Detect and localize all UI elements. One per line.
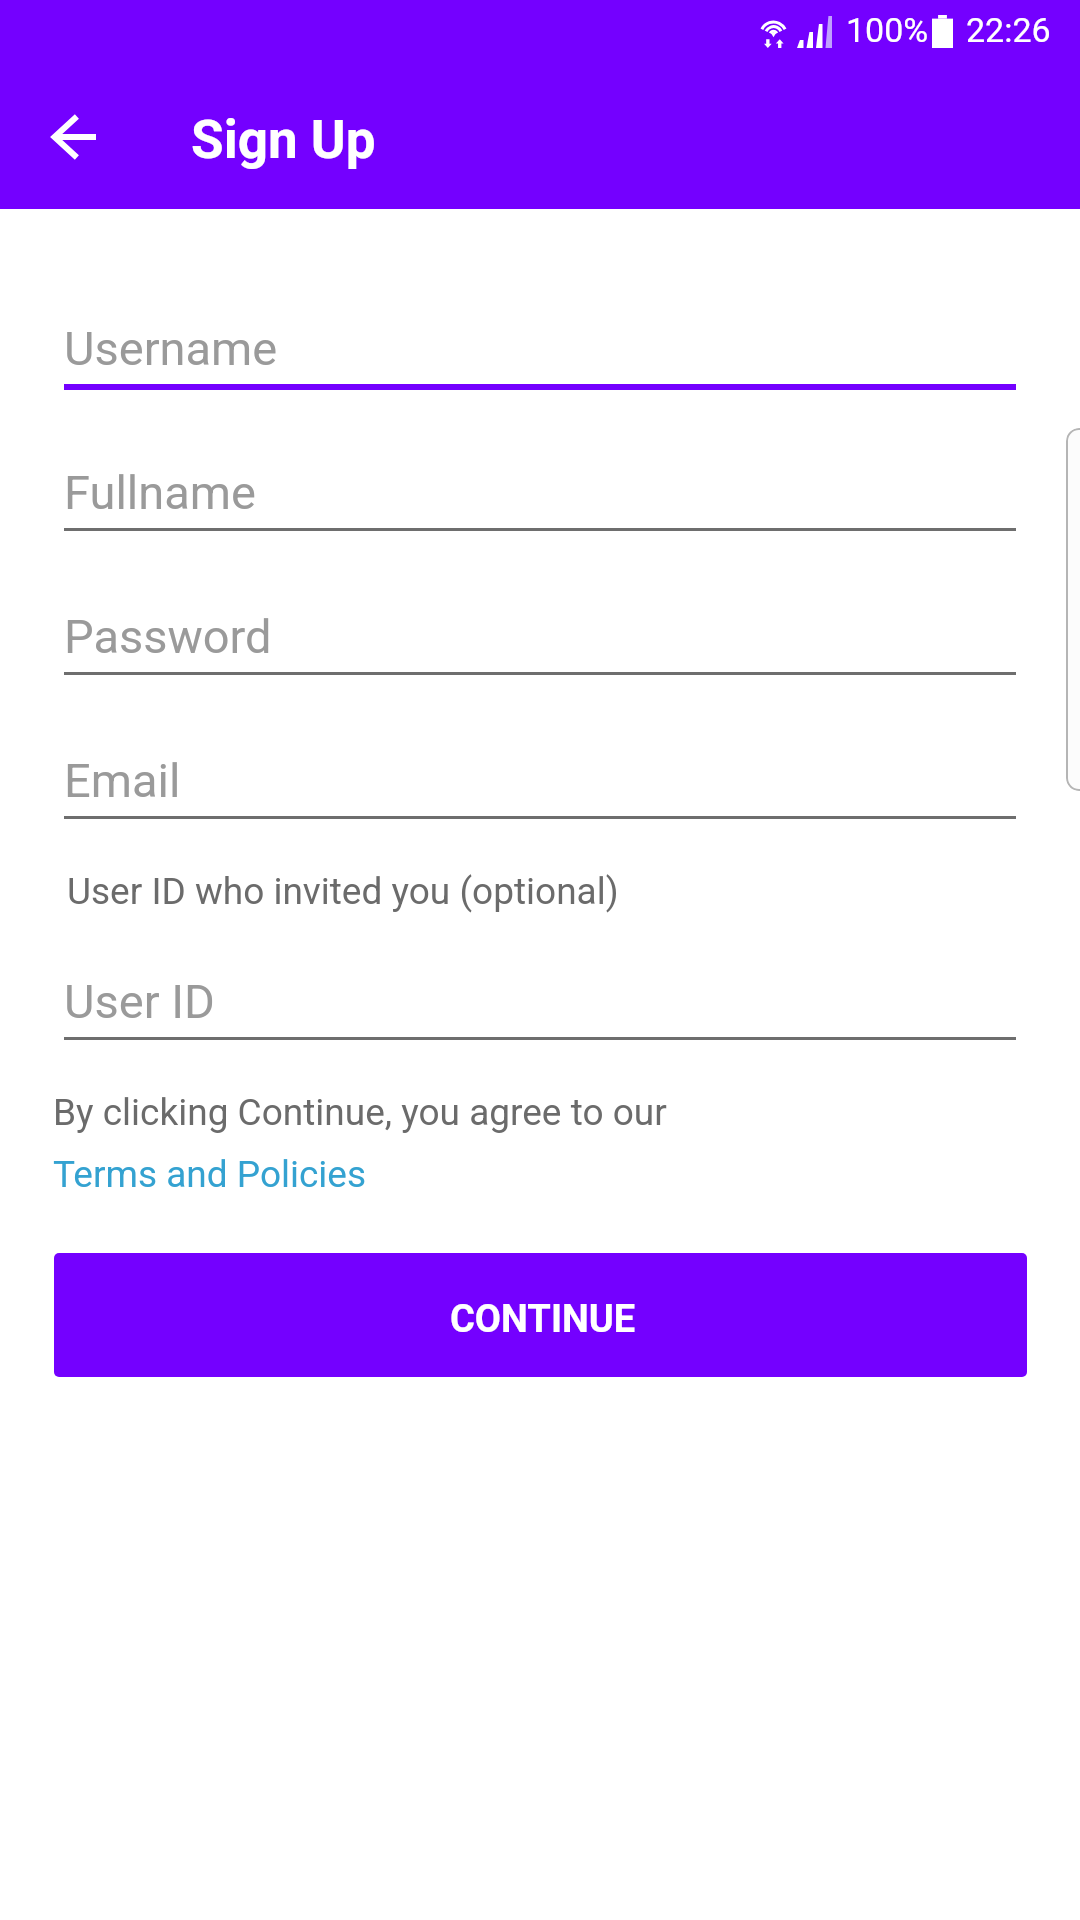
staticText: Terms and Policies [53, 1153, 367, 1196]
button[interactable]: Password [64, 593, 1016, 671]
button[interactable]: User ID [64, 958, 1016, 1036]
button[interactable]: Fullname [64, 449, 1016, 527]
staticText: User ID [64, 974, 215, 1029]
staticText: 100% [846, 10, 929, 50]
button[interactable]: Email [64, 737, 1016, 815]
staticText: CONTINUE [450, 1297, 636, 1342]
staticText: 22:26 [966, 10, 1051, 50]
staticText: Username [64, 321, 278, 376]
button[interactable]: Terms and Policies [53, 1150, 373, 1202]
button[interactable]: CONTINUE [54, 1253, 1027, 1377]
staticText: User ID who invited you (optional) [67, 870, 619, 913]
button[interactable]: Back [28, 92, 120, 184]
staticText: Fullname [64, 465, 256, 520]
staticText: Email [64, 753, 181, 808]
staticText: Password [64, 609, 272, 664]
staticText: Sign Up [191, 109, 376, 171]
staticText: By clicking Continue, you agree to our [53, 1091, 667, 1134]
button[interactable]: Username [64, 305, 1016, 383]
